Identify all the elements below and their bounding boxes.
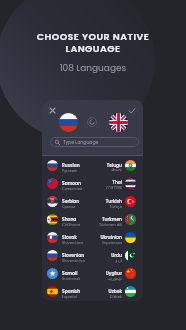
button[interactable]: Uzbek xyxy=(92,282,143,300)
button[interactable]: Somali xyxy=(42,264,92,282)
button[interactable]: Ukrainian xyxy=(92,228,143,246)
staticText: اردو xyxy=(93,258,122,262)
button[interactable]: Turkmen xyxy=(92,210,143,228)
staticText: Urdu xyxy=(93,252,122,258)
staticText: 108 Languages xyxy=(0,62,186,75)
staticText: Soomaali xyxy=(62,276,92,281)
staticText: Shona xyxy=(62,216,92,222)
staticText: Slovenian xyxy=(62,252,92,258)
staticText: తెలుగు xyxy=(93,168,122,173)
staticText: Turkish xyxy=(93,198,122,204)
staticText: Slovenčina xyxy=(62,240,92,245)
staticText: Español xyxy=(62,294,92,299)
button[interactable]: Swap languages xyxy=(87,117,97,127)
staticText: O'zbek xyxy=(93,294,122,299)
staticText: Spanish xyxy=(62,288,92,294)
button[interactable]: Turkish xyxy=(92,192,143,210)
staticText: Ukrainian xyxy=(93,234,122,240)
button[interactable]: Slovenian xyxy=(42,246,92,264)
button[interactable]: Slovak xyxy=(42,228,92,246)
button[interactable]: Uyghur xyxy=(92,264,143,282)
staticText: Українська xyxy=(93,240,122,245)
staticText: Telugu xyxy=(93,162,122,168)
button[interactable]: Close xyxy=(47,105,58,116)
staticText: Türkçe xyxy=(93,204,122,209)
staticText: ChiShona xyxy=(62,222,92,227)
staticText: Russian xyxy=(62,162,92,168)
button[interactable]: Urdu xyxy=(92,246,143,264)
button[interactable]: Type Language xyxy=(50,137,139,147)
button[interactable]: Telugu xyxy=(92,156,143,174)
button[interactable]: Russian xyxy=(42,156,92,174)
staticText: CHOOSE YOUR NATIVE LANGUAGE xyxy=(0,30,186,56)
staticText: Русский xyxy=(62,168,92,173)
staticText: Thai xyxy=(93,179,122,185)
staticText: Slovenščina xyxy=(62,258,92,263)
staticText: ئۇيغۇرچە xyxy=(93,276,122,280)
staticText: Uzbek xyxy=(93,288,122,294)
staticText: ภาษาไทย xyxy=(93,185,122,191)
button[interactable]: Spanish xyxy=(42,282,92,300)
staticText: Somali xyxy=(62,270,92,276)
staticText: Samoan xyxy=(62,180,92,186)
staticText: Turkmen xyxy=(93,216,122,222)
button[interactable]: Confirm xyxy=(126,105,137,116)
staticText: Cаваасиий xyxy=(62,186,92,191)
button[interactable]: Samoan xyxy=(42,174,92,192)
button[interactable]: Thai xyxy=(92,174,143,192)
staticText: Type Language xyxy=(63,139,99,145)
staticText: Türkmen dili xyxy=(93,222,122,227)
button[interactable]: Serbian xyxy=(42,192,92,210)
staticText: Serbian xyxy=(62,198,92,204)
staticText: Slovak xyxy=(62,234,92,240)
staticText: Српски xyxy=(62,204,92,209)
button[interactable]: Shona xyxy=(42,210,92,228)
staticText: Uyghur xyxy=(93,270,122,276)
